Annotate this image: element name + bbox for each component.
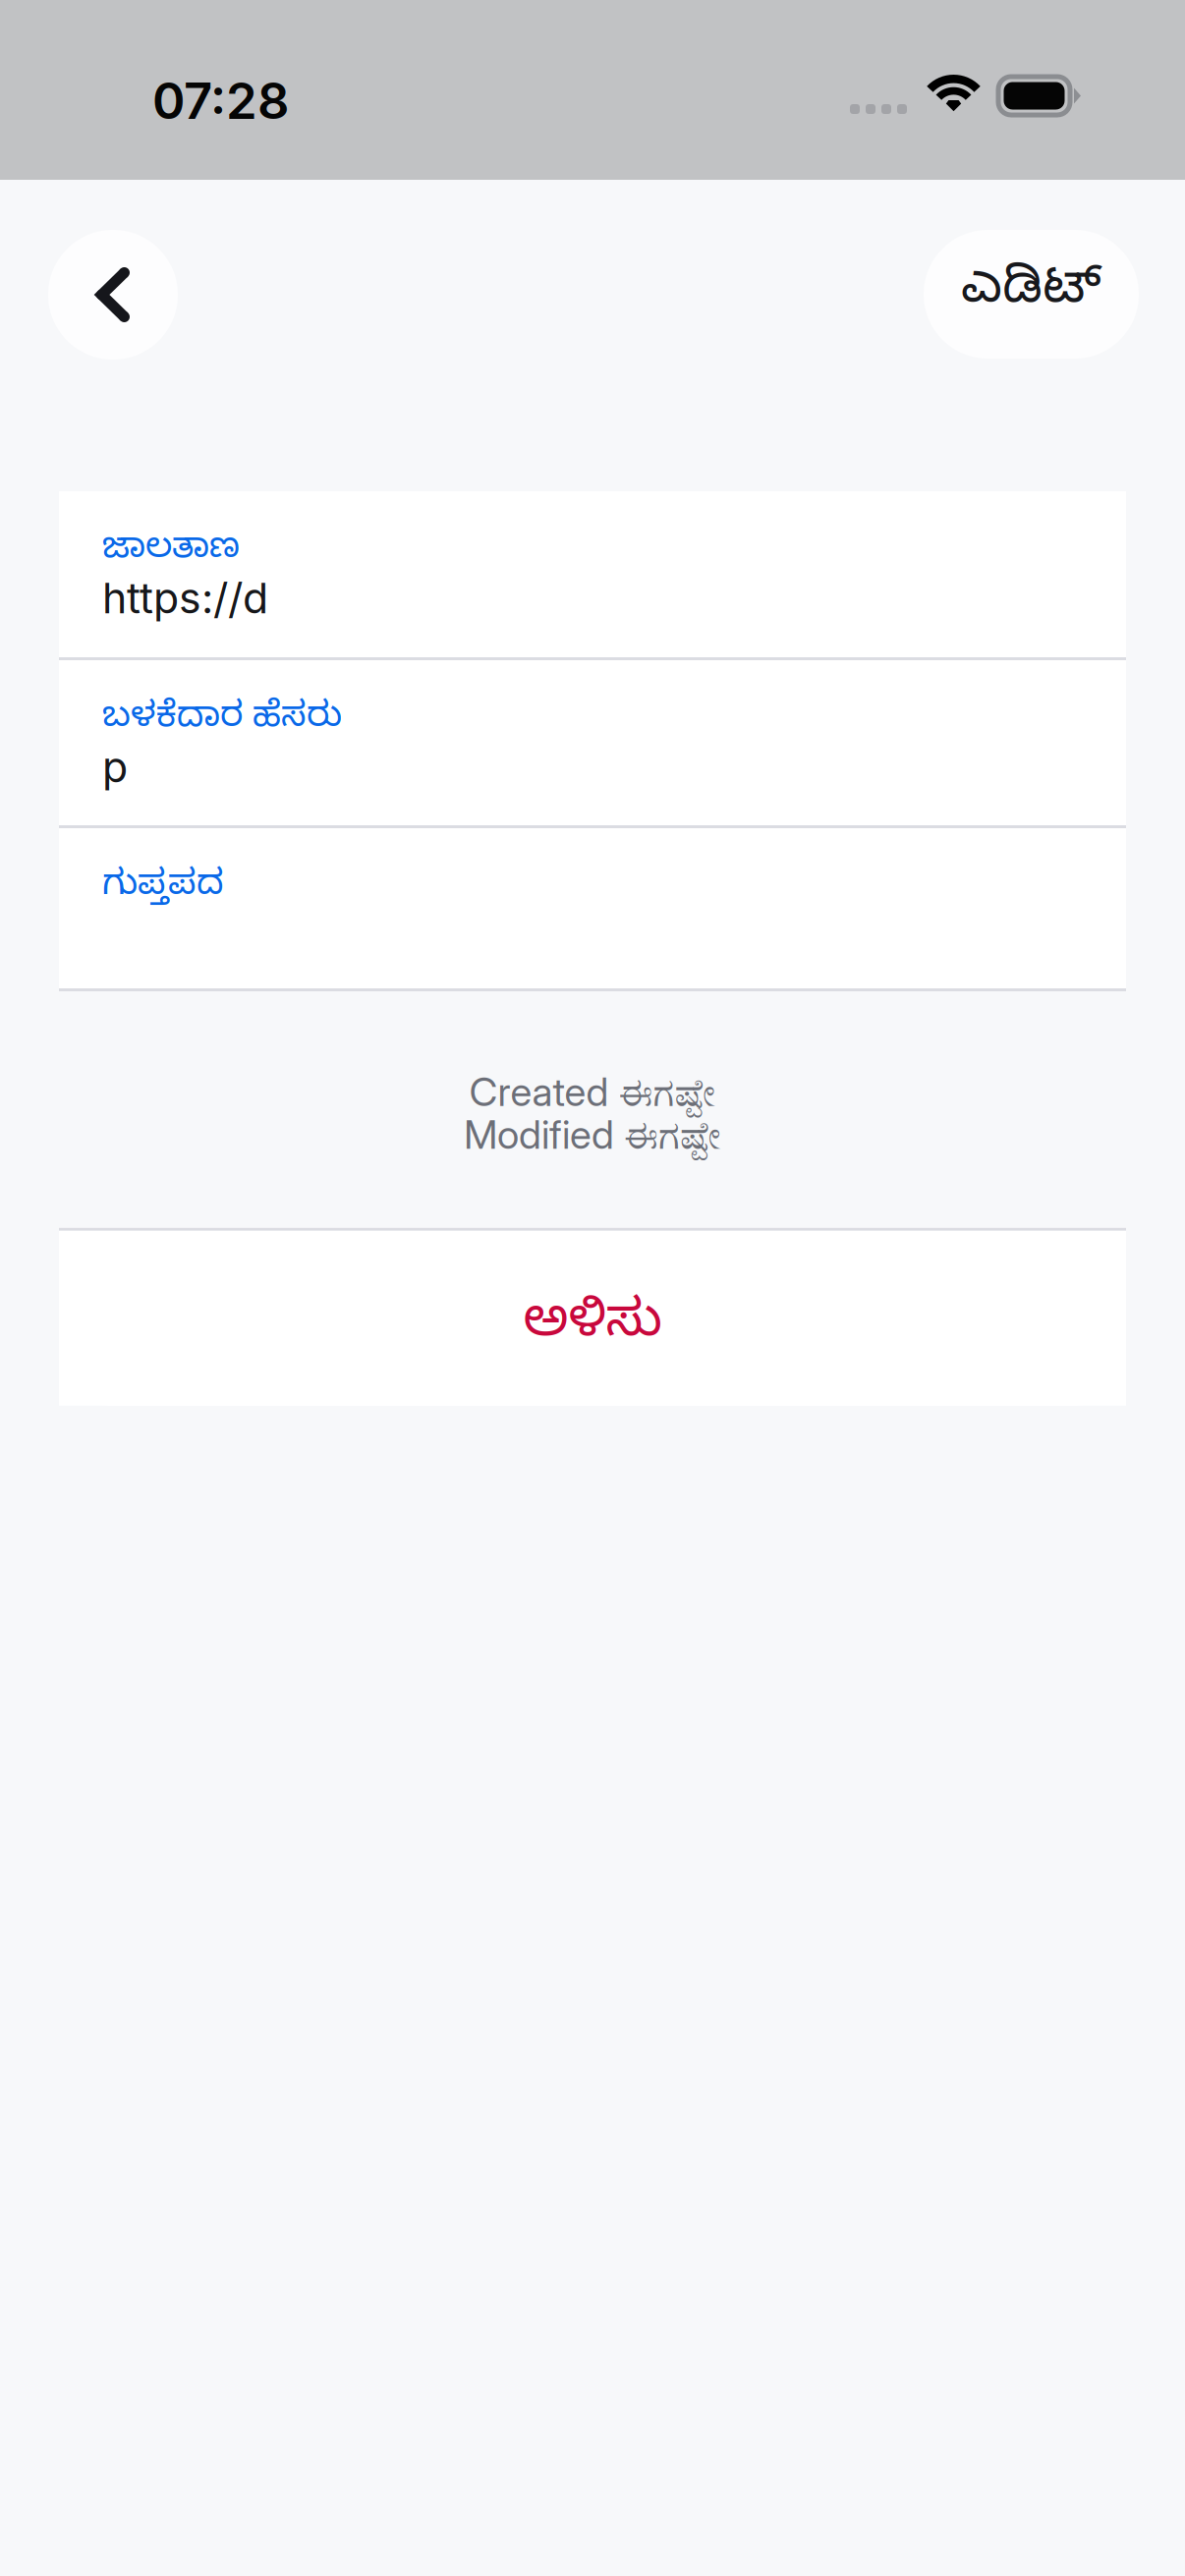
button[interactable]: Back <box>48 230 178 360</box>
staticText: ಗುಪ್ತಪದ <box>102 866 224 913</box>
staticText: Modified ಈಗಷ್ಟೇ <box>464 1111 721 1158</box>
staticText: p <box>102 742 128 792</box>
staticText: ಎಡಿಟ್ <box>961 259 1101 330</box>
staticText: Created ಈಗಷ್ಟೇ <box>469 1068 716 1115</box>
button[interactable]: ಅಳಿಸು <box>59 1228 1126 1406</box>
staticText: 07:28 <box>152 71 289 131</box>
staticText: ಜಾಲತಾಣ <box>102 529 240 576</box>
staticText: ಬಳಕೆದಾರ ಹೆಸರು <box>102 698 342 745</box>
button[interactable]: ಎಡಿಟ್ <box>924 230 1139 359</box>
staticText: ಅಳಿಸು <box>523 1293 662 1363</box>
staticText: https://d <box>102 573 268 623</box>
